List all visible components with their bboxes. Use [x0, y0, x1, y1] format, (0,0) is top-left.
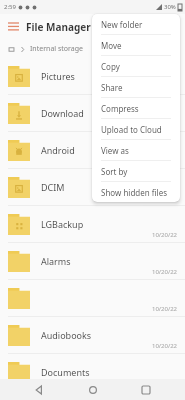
staticText: Pictures	[41, 70, 177, 82]
button[interactable]: Pictures	[0, 58, 185, 95]
staticText: LGBackup	[41, 218, 151, 230]
button[interactable]: Show hidden files	[92, 182, 180, 202]
staticText: Audiobooks	[41, 329, 151, 341]
staticText: Share	[101, 82, 123, 93]
staticText: 10/20/22	[151, 305, 177, 313]
button[interactable]: Documents	[0, 354, 185, 391]
button[interactable]: 10/20/22	[0, 280, 185, 317]
button[interactable]: New folder	[92, 14, 180, 34]
staticText: Show hidden files	[101, 187, 167, 198]
button[interactable]: Download	[0, 95, 185, 132]
button[interactable]: Android	[0, 132, 185, 169]
staticText: 2:59	[4, 3, 16, 11]
button[interactable]: Audiobooks	[0, 317, 185, 354]
button[interactable]: Back	[24, 379, 54, 400]
staticText: 30%	[164, 3, 176, 11]
button[interactable]: Upload to Cloud	[92, 119, 180, 139]
staticText: Move	[101, 40, 122, 51]
staticText: Internal storage	[30, 44, 83, 54]
staticText: Documents	[41, 366, 151, 378]
staticText: Compress	[101, 103, 139, 114]
button[interactable]: Move	[92, 35, 180, 55]
button[interactable]: Share	[92, 77, 180, 97]
staticText: Alarms	[41, 255, 151, 267]
button[interactable]: Menu	[0, 14, 26, 40]
staticText: Sort by	[101, 166, 128, 177]
staticText: 10/20/22	[151, 231, 177, 239]
button[interactable]: Compress	[92, 98, 180, 118]
staticText: View as	[101, 145, 129, 156]
staticText: Movies	[41, 391, 151, 399]
staticText: Upload to Cloud	[101, 124, 162, 135]
staticText: Download	[41, 107, 177, 119]
staticText: Copy	[101, 61, 120, 72]
button[interactable]: Copy	[92, 56, 180, 76]
staticText: File Manager	[26, 20, 91, 34]
staticText: 10/20/22	[151, 268, 177, 276]
button[interactable]: LGBackup	[0, 206, 185, 243]
staticText: Android	[41, 144, 177, 156]
staticText: 10/20/22	[151, 342, 177, 350]
button[interactable]: Alarms	[0, 243, 185, 280]
button[interactable]: Sort by	[92, 161, 180, 181]
button[interactable]: Movies	[0, 391, 185, 400]
staticText: New folder	[101, 19, 143, 30]
button[interactable]: Recent apps	[131, 379, 161, 400]
button[interactable]: Home	[78, 379, 108, 400]
button[interactable]: DCIM	[0, 169, 185, 206]
button[interactable]: View as	[92, 140, 180, 160]
staticText: DCIM	[41, 181, 177, 193]
